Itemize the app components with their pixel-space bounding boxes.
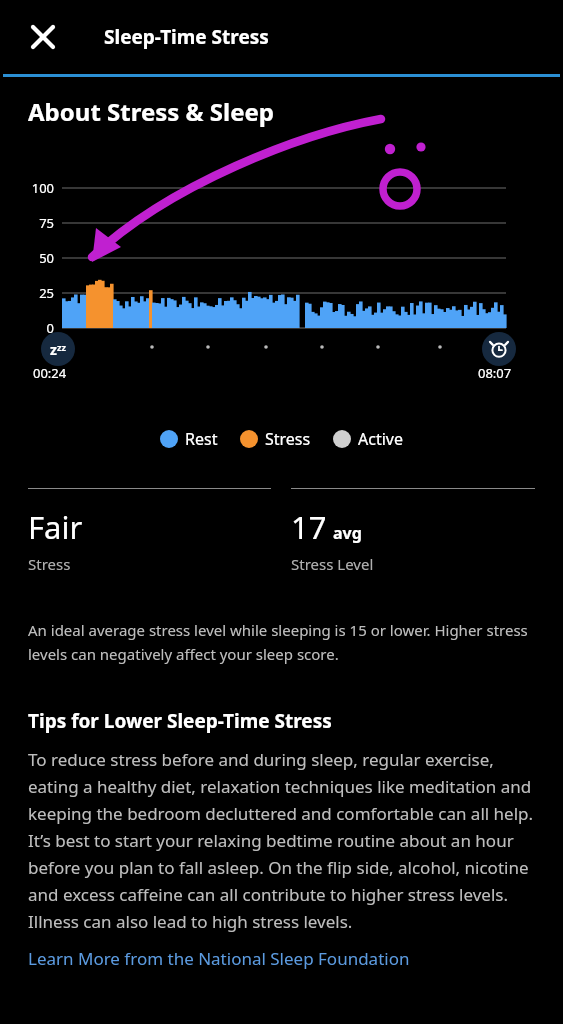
staticText: Tips for Lower Sleep-Time Stress <box>28 708 332 734</box>
staticText: Learn More from the National Sleep Found… <box>28 947 410 970</box>
button[interactable]: Sleep start <box>41 332 75 366</box>
staticText: 0 <box>0 319 54 337</box>
staticText: Stress <box>265 428 311 450</box>
staticText: About Stress & Sleep <box>28 95 275 128</box>
button[interactable]: Learn More from the National Sleep Found… <box>0 947 563 970</box>
staticText: Rest <box>185 428 218 450</box>
staticText: 17 <box>291 506 327 548</box>
staticText: Fair <box>28 506 83 548</box>
staticText: 00:24 <box>33 364 67 382</box>
staticText: An ideal average stress level while slee… <box>28 620 537 664</box>
staticText: zᶻᶻ <box>50 340 66 359</box>
button[interactable]: Stress <box>240 428 311 450</box>
staticText: Sleep-Time Stress <box>104 24 269 50</box>
button[interactable]: Rest <box>160 428 218 450</box>
staticText: 75 <box>0 214 54 232</box>
staticText: 08:07 <box>478 364 512 382</box>
staticText: 50 <box>0 249 54 267</box>
staticText: To reduce stress before and during sleep… <box>28 748 537 933</box>
button[interactable]: Wake time <box>482 332 516 366</box>
staticText: 25 <box>0 284 54 302</box>
button[interactable]: Active <box>333 428 403 450</box>
staticText: avg <box>333 522 362 544</box>
staticText: Active <box>358 428 403 450</box>
staticText: Stress Level <box>291 554 374 574</box>
staticText: Stress <box>28 554 71 574</box>
button[interactable]: Close <box>16 10 70 64</box>
button[interactable]: 17 <box>291 488 535 574</box>
button[interactable]: Fair <box>28 488 271 574</box>
staticText: 100 <box>0 179 54 197</box>
